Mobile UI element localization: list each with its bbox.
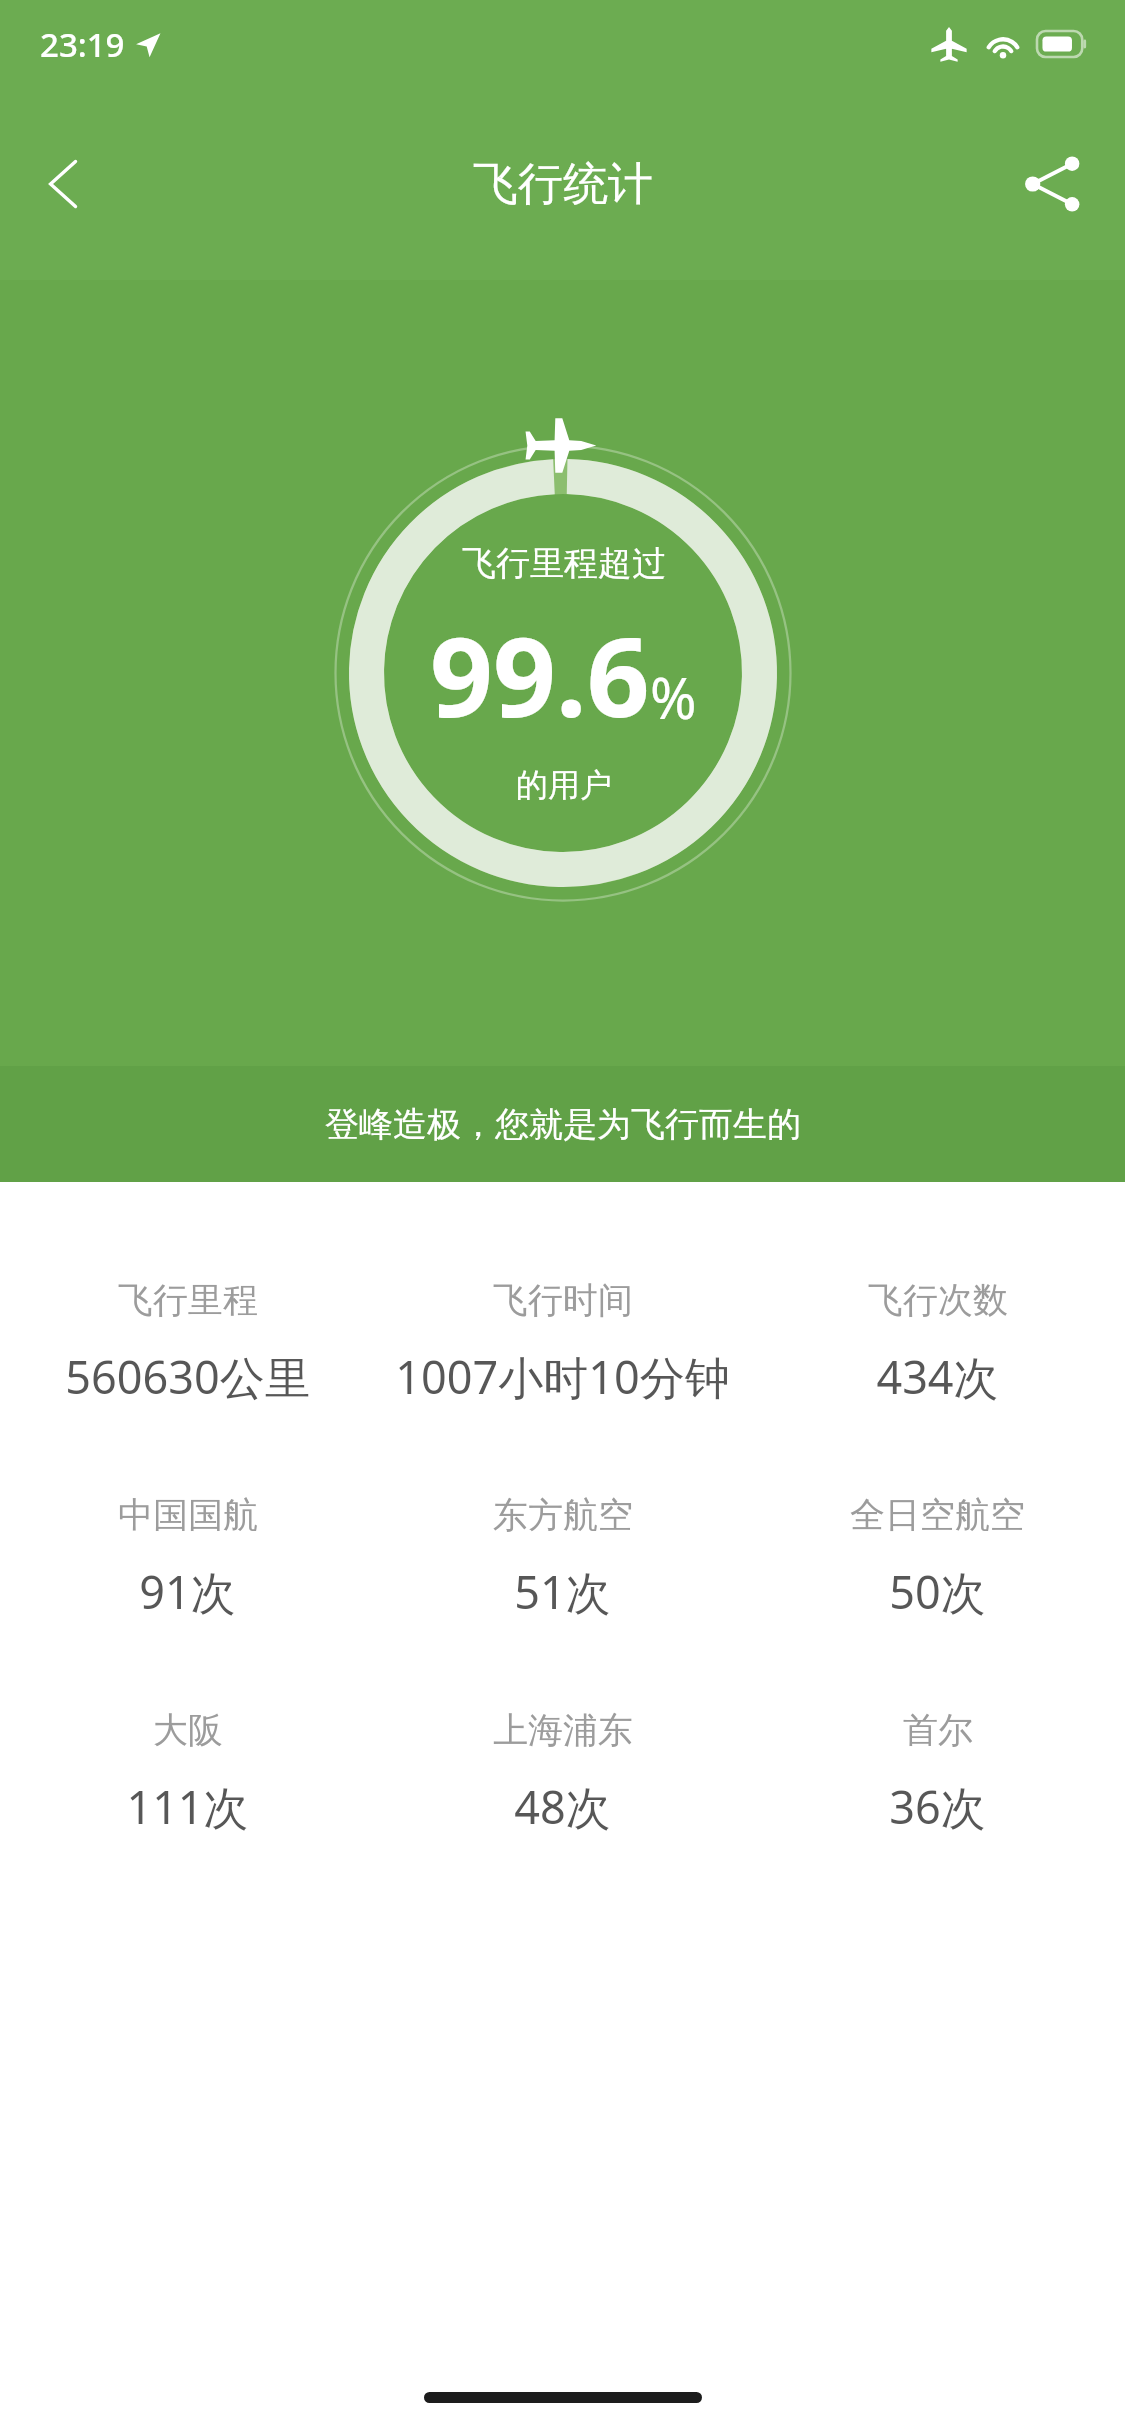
button[interactable]: 飞行里程 <box>0 1278 375 1407</box>
staticText: 36次 <box>889 1776 986 1837</box>
button[interactable]: 东方航空 <box>375 1493 750 1622</box>
staticText: 434次 <box>876 1346 999 1407</box>
staticText: 飞行统计 <box>473 156 653 213</box>
button[interactable]: Share <box>997 128 1109 240</box>
button[interactable]: 飞行次数 <box>750 1278 1125 1407</box>
staticText: 全日空航空 <box>850 1493 1025 1537</box>
button[interactable]: 大阪 <box>0 1708 375 1837</box>
staticText: 23:19 <box>40 22 125 67</box>
staticText: 91次 <box>139 1561 236 1622</box>
staticText: 111次 <box>126 1776 249 1837</box>
button[interactable]: 飞行时间 <box>375 1278 750 1407</box>
staticText: 中国国航 <box>118 1493 258 1537</box>
button[interactable]: Back <box>8 128 120 240</box>
staticText: 50次 <box>889 1561 986 1622</box>
button[interactable]: 全日空航空 <box>750 1493 1125 1622</box>
staticText: 飞行里程超过 <box>462 542 666 585</box>
staticText: 48次 <box>514 1776 611 1837</box>
staticText: 东方航空 <box>493 1493 633 1537</box>
staticText: 的用户 <box>516 765 612 805</box>
button[interactable]: 中国国航 <box>0 1493 375 1622</box>
staticText: 560630公里 <box>65 1346 310 1407</box>
staticText: 51次 <box>514 1561 611 1622</box>
staticText: 飞行时间 <box>493 1278 633 1322</box>
staticText: 99.6 <box>430 599 650 749</box>
staticText: 1007小时10分钟 <box>395 1346 730 1407</box>
button[interactable]: 首尔 <box>750 1708 1125 1837</box>
staticText: % <box>650 659 697 735</box>
staticText: 上海浦东 <box>493 1708 633 1752</box>
staticText: 大阪 <box>153 1708 223 1752</box>
button[interactable]: 上海浦东 <box>375 1708 750 1837</box>
staticText: 飞行里程 <box>118 1278 258 1322</box>
staticText: 登峰造极，您就是为飞行而生的 <box>325 1103 801 1146</box>
staticText: 首尔 <box>903 1708 973 1752</box>
staticText: 飞行次数 <box>868 1278 1008 1322</box>
